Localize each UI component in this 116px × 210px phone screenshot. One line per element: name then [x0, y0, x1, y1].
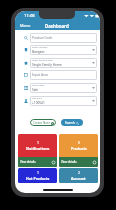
staticText: Product Code: [32, 36, 53, 40]
button[interactable]: Sale: [22, 83, 97, 93]
staticText: Select property type: [32, 59, 53, 62]
button[interactable]: Bangeer: [22, 45, 97, 55]
staticText: Hot Products: [26, 176, 50, 181]
button[interactable]: Search: [61, 119, 83, 126]
staticText: Input Area: [32, 73, 48, 77]
staticText: Account: [71, 176, 86, 181]
button[interactable]: 5: [59, 134, 98, 167]
staticText: 11:08: [24, 13, 35, 19]
button[interactable]: 2: [59, 168, 98, 183]
staticText: Bangeer: [32, 50, 45, 54]
staticText: Single-Family Home: [32, 63, 62, 67]
staticText: Products: [71, 146, 87, 151]
button[interactable]: +100541: [22, 96, 97, 106]
staticText: Sale Price: [32, 97, 42, 100]
staticText: +100541: [32, 101, 45, 105]
staticText: Create Note: [33, 121, 50, 125]
button[interactable]: Menu: [18, 21, 33, 30]
staticText: Search: [65, 121, 75, 125]
button[interactable]: Single-Family Home: [22, 58, 97, 68]
staticText: Select Location: [32, 46, 48, 49]
staticText: Dashboard: [45, 23, 69, 29]
button[interactable]: Create Note: [30, 119, 56, 126]
staticText: 5: [78, 140, 80, 145]
staticText: Sale or Rent: [32, 84, 45, 87]
button[interactable]: 1: [18, 168, 57, 183]
staticText: 1: [37, 140, 39, 145]
staticText: Sale: [32, 88, 39, 92]
button[interactable]: 1: [18, 134, 57, 167]
staticText: 2: [78, 170, 80, 175]
button[interactable]: Product Code: [22, 33, 97, 43]
staticText: View details: [20, 160, 36, 164]
staticText: Menu: [20, 23, 31, 28]
staticText: View details: [61, 160, 77, 164]
button[interactable]: Input Area: [22, 70, 97, 80]
staticText: Notifications: [26, 146, 50, 151]
staticText: 1: [37, 170, 39, 175]
